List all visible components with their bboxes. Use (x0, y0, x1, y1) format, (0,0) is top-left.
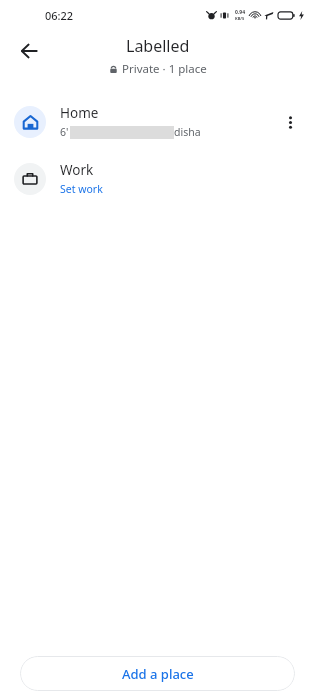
button[interactable]: Add a place (20, 656, 295, 691)
button[interactable]: Back (11, 33, 47, 69)
staticText: Work (60, 161, 94, 179)
staticText: Labelled (126, 35, 190, 57)
button[interactable]: Home (0, 93, 315, 150)
staticText: Add a place (122, 665, 194, 683)
staticText: KB/S (235, 16, 245, 21)
staticText: Home (60, 104, 99, 122)
staticText: 6' (60, 125, 69, 139)
button[interactable]: Work (0, 150, 315, 207)
staticText: Set work (60, 182, 103, 196)
staticText: 0.94 (235, 9, 245, 16)
staticText: 06:22 (45, 8, 74, 23)
button[interactable]: More options (272, 104, 308, 140)
staticText: Private · 1 place (122, 61, 207, 77)
staticText: disha (174, 125, 201, 139)
